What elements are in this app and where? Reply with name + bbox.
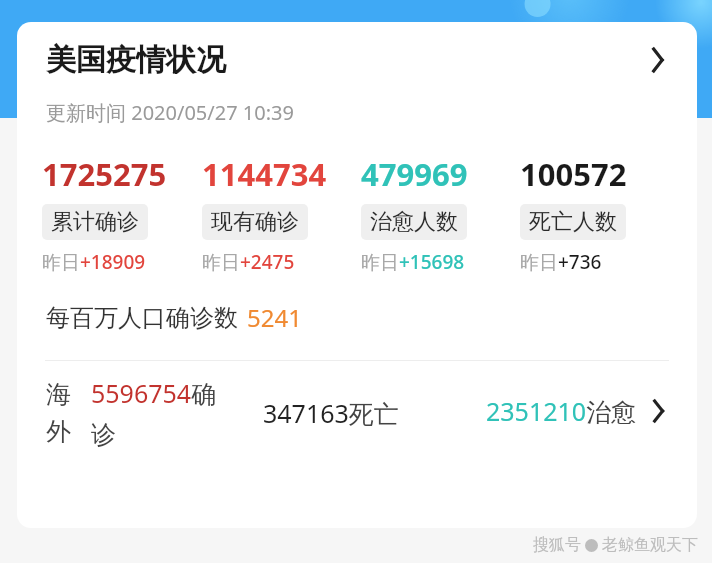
staticText: 昨日+736 [520, 249, 602, 275]
staticText: 347163死亡 [263, 396, 399, 430]
button[interactable]: 美国疫情状况 [17, 22, 697, 98]
staticText: 海 [46, 379, 71, 410]
staticText: 更新时间 2020/05/27 10:39 [46, 99, 294, 126]
button[interactable]: 100572 [520, 153, 679, 275]
staticText: 5241 [247, 301, 302, 334]
button[interactable]: 1144734 [202, 153, 361, 275]
staticText: 美国疫情状况 [46, 41, 226, 79]
staticText: 昨日+2475 [202, 249, 295, 275]
staticText: 1144734 [202, 153, 327, 195]
staticText: 479969 [361, 153, 468, 195]
other: 查看海外疫情 [649, 399, 673, 423]
staticText: 老鲸鱼观天下 [602, 535, 698, 555]
staticText: 昨日+15698 [361, 249, 465, 275]
button[interactable]: 479969 [361, 153, 520, 275]
staticText: 现有确诊 [211, 208, 299, 236]
staticText: 搜狐号 [533, 535, 581, 555]
staticText: 昨日+18909 [42, 249, 146, 275]
staticText: 死亡人数 [529, 208, 617, 236]
staticText: 累计确诊 [51, 208, 139, 236]
staticText: 1725275 [42, 153, 167, 195]
staticText: 外 [46, 416, 71, 447]
button[interactable]: 海 [17, 361, 697, 461]
staticText: 2351210治愈 [486, 394, 637, 428]
button[interactable]: 1725275 [42, 153, 202, 275]
staticText: 治愈人数 [370, 208, 458, 236]
staticText: 100572 [520, 153, 627, 195]
staticText: 5596754确诊 [91, 376, 241, 450]
staticText: 每百万人口确诊数 [46, 303, 238, 333]
